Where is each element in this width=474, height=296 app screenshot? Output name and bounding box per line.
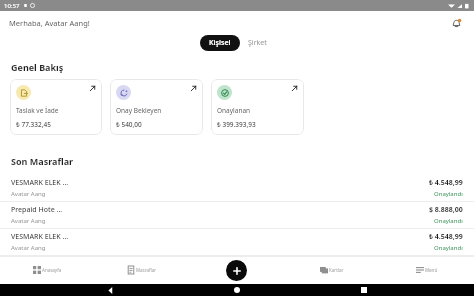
button[interactable]: Onay Bekleyen	[110, 79, 203, 135]
button[interactable]: Taslak ve İade	[10, 79, 102, 135]
button[interactable]: Home	[230, 284, 244, 296]
staticText: Anasayfa	[42, 267, 62, 273]
staticText: Onaylanan	[217, 106, 251, 115]
staticText: Son Masraflar	[11, 155, 74, 167]
button[interactable]: Notifications	[447, 14, 465, 32]
button[interactable]: Menü	[379, 256, 474, 284]
button[interactable]: VESMARK ELEK ...	[0, 229, 474, 256]
button[interactable]: Recents	[357, 284, 371, 296]
button[interactable]: Prepaid Hote ...	[0, 202, 474, 229]
button[interactable]: Add	[226, 260, 247, 281]
staticText: 10:57	[4, 2, 20, 10]
button[interactable]: Onaylanan	[211, 79, 304, 135]
staticText: Taslak ve İade	[16, 106, 59, 115]
button[interactable]: Şirket	[240, 35, 275, 51]
staticText: VESMARK ELEK ...	[11, 178, 69, 188]
staticText: ₺ 4.548,99	[429, 178, 463, 188]
staticText: VESMARK ELEK ...	[11, 232, 69, 242]
staticText: Avatar Aang	[11, 217, 46, 225]
staticText: ₺ 4.548,99	[429, 232, 463, 242]
staticText: ₺ 540,00	[116, 120, 142, 129]
staticText: Prepaid Hote ...	[11, 205, 63, 215]
staticText: Avatar Aang	[11, 244, 46, 252]
staticText: Kişisel	[209, 38, 231, 48]
staticText: Masraflar	[136, 267, 157, 273]
staticText: Onaylandı	[434, 244, 463, 252]
staticText: Genel Bakış	[11, 61, 64, 73]
staticText: $ 8.888,00	[429, 205, 463, 215]
button[interactable]: Kartlar	[284, 256, 379, 284]
button[interactable]: Anasayfa	[0, 256, 94, 284]
staticText: Onay Bekleyen	[116, 106, 162, 115]
staticText: Onaylandı	[434, 217, 463, 225]
button[interactable]: Masraflar	[94, 256, 189, 284]
button[interactable]: VESMARK ELEK ...	[0, 175, 474, 202]
staticText: Kartlar	[329, 267, 344, 273]
staticText: ₺ 77.332,45	[16, 120, 51, 129]
staticText: Şirket	[248, 38, 267, 48]
button[interactable]: Back	[103, 284, 117, 296]
staticText: Avatar Aang	[11, 190, 46, 198]
staticText: Onaylandı	[434, 190, 463, 198]
staticText: Merhaba, Avatar Aang!	[9, 18, 90, 28]
staticText: Menü	[425, 267, 438, 273]
button[interactable]: Kişisel	[200, 35, 240, 51]
staticText: ₺ 399.393,93	[217, 120, 256, 129]
